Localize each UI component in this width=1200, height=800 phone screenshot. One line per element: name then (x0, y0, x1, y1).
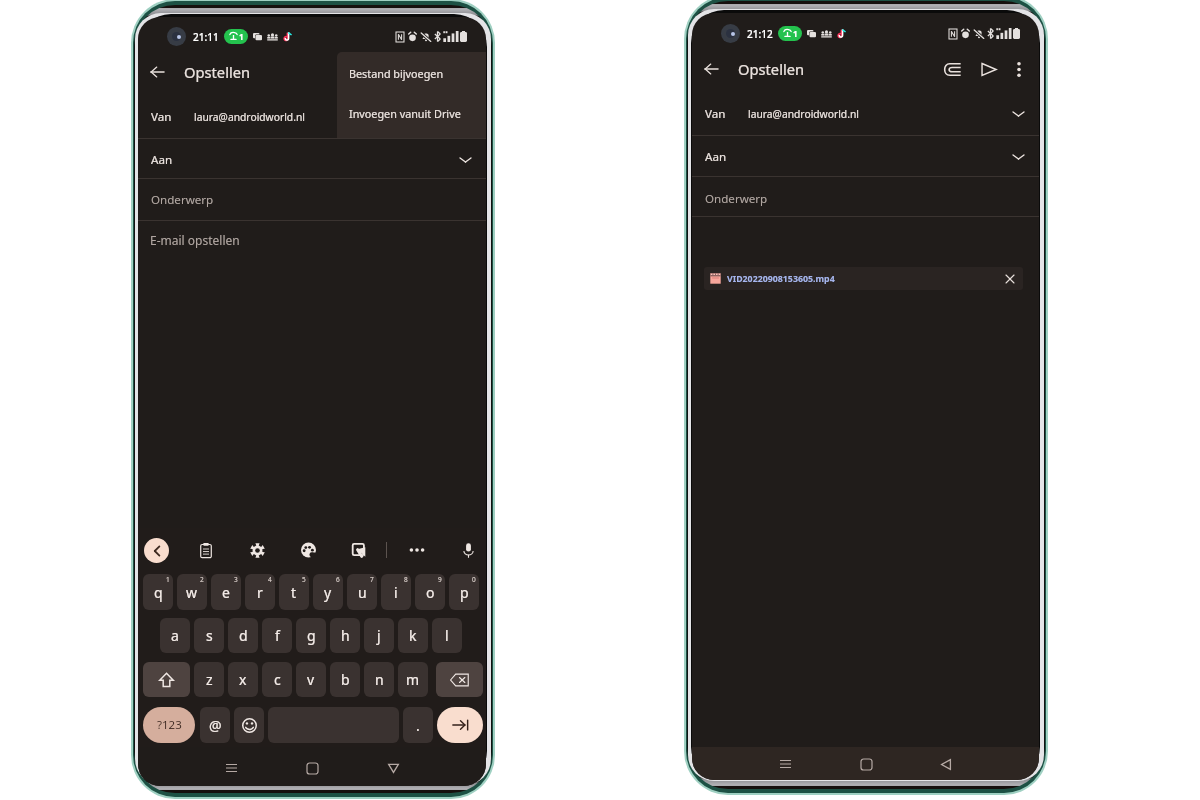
staticText: 21:12 (747, 27, 773, 41)
button[interactable]: Recente apps (770, 749, 800, 779)
staticText: f (275, 626, 280, 645)
button[interactable]: c (262, 662, 292, 697)
button[interactable]: Terug (694, 52, 728, 86)
staticText: w (186, 583, 198, 602)
button[interactable]: VID20220908153605.mp4 (704, 267, 1023, 290)
staticText: ?123 (157, 717, 182, 733)
staticText: Van (705, 106, 726, 122)
staticText: 6 (336, 575, 340, 584)
button[interactable] (436, 662, 483, 697)
staticText: m (406, 670, 420, 689)
staticText: laura@androidworld.nl (748, 107, 859, 121)
staticText: n (375, 670, 384, 689)
staticText: l (445, 626, 449, 645)
button[interactable]: t (279, 574, 309, 610)
staticText: t (291, 583, 297, 602)
staticText: Opstellen (738, 59, 805, 79)
button[interactable]: Klembord (194, 538, 218, 562)
button[interactable] (234, 707, 264, 743)
button[interactable]: v (296, 662, 326, 697)
button[interactable]: Van (138, 98, 486, 136)
staticText: Onderwerp (151, 192, 214, 208)
button[interactable]: Bijlage toevoegen (936, 53, 968, 85)
button[interactable]: Instellingen (245, 538, 269, 562)
staticText: u (358, 583, 367, 602)
button[interactable]: Terug (931, 749, 961, 779)
button[interactable]: h (330, 618, 360, 653)
button[interactable]: Van (692, 95, 1039, 132)
staticText: i (394, 583, 398, 602)
button[interactable]: Aan (138, 141, 486, 179)
button[interactable]: e (211, 574, 241, 610)
button[interactable]: n (364, 662, 394, 697)
staticText: 1 (239, 31, 244, 42)
button[interactable]: q (143, 574, 173, 610)
staticText: k (409, 626, 417, 645)
button[interactable]: b (330, 662, 360, 697)
button[interactable]: p (449, 574, 479, 610)
button[interactable]: m (398, 662, 428, 697)
button[interactable]: i (381, 574, 411, 610)
button[interactable]: f (262, 618, 292, 653)
button[interactable]: Bestand bijvoegen (337, 52, 486, 95)
button[interactable]: Toetsenbord sluiten (144, 538, 169, 563)
button[interactable]: @ (200, 707, 230, 743)
button[interactable]: x (228, 662, 258, 697)
staticText: 1 (793, 28, 798, 39)
staticText: Bestand bijvoegen (349, 66, 444, 81)
button[interactable]: j (364, 618, 394, 653)
button[interactable]: Formaat wijzigen (347, 538, 371, 562)
staticText: y (324, 583, 332, 602)
staticText: o (426, 583, 435, 602)
button[interactable]: s (194, 618, 224, 653)
button[interactable]: l (432, 618, 462, 653)
button[interactable]: u (347, 574, 377, 610)
button[interactable]: Terug (140, 55, 174, 89)
button[interactable]: Startscherm (851, 749, 881, 779)
button[interactable]: Aan (692, 138, 1039, 175)
staticText: p (460, 583, 469, 602)
button[interactable]: z (194, 662, 224, 697)
button[interactable]: w (177, 574, 207, 610)
button[interactable]: r (245, 574, 275, 610)
button[interactable]: a (160, 618, 190, 653)
staticText: laura@androidworld.nl (194, 110, 305, 124)
button[interactable]: y (313, 574, 343, 610)
button[interactable]: Meer opties (405, 538, 429, 562)
staticText: Aan (705, 149, 727, 165)
button[interactable]: Spraakinvoer (456, 538, 480, 562)
button[interactable]: Onderwerp (138, 181, 486, 219)
button[interactable]: Startscherm (297, 753, 327, 783)
button[interactable]: o (415, 574, 445, 610)
button[interactable]: Meer opties (1005, 55, 1033, 83)
button[interactable]: ?123 (143, 707, 195, 743)
button[interactable]: Toetsenbord verbergen (378, 753, 408, 783)
staticText: 9 (438, 575, 442, 584)
staticText: 7 (370, 575, 374, 584)
button[interactable]: Bijlage verwijderen (1001, 270, 1019, 288)
button[interactable]: g (296, 618, 326, 653)
button[interactable]: d (228, 618, 258, 653)
button[interactable]: Volgende (437, 707, 483, 743)
staticText: . (416, 716, 420, 735)
staticText: s (206, 626, 213, 645)
staticText: 5 (302, 575, 306, 584)
staticText: h (341, 626, 350, 645)
button[interactable]: Verzenden (972, 53, 1004, 85)
button[interactable]: Onderwerp (692, 180, 1039, 218)
button[interactable]: . (403, 707, 433, 743)
button[interactable]: Thema (296, 538, 320, 562)
staticText: g (307, 626, 316, 645)
staticText: Van (151, 109, 172, 125)
staticText: 1 (166, 575, 170, 584)
staticText: Aan (151, 152, 173, 168)
button[interactable] (143, 662, 190, 697)
staticText: E-mail opstellen (150, 232, 240, 248)
button[interactable]: k (398, 618, 428, 653)
staticText: v (307, 670, 315, 689)
staticText: r (257, 583, 263, 602)
staticText: 8 (404, 575, 408, 584)
button[interactable]: Recente apps (216, 753, 246, 783)
button[interactable]: Invoegen vanuit Drive (337, 95, 486, 131)
